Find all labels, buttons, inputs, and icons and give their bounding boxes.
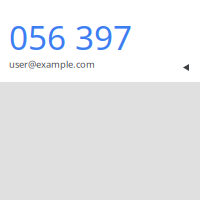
staticText: user@example.com: [9, 58, 95, 70]
button[interactable]: 056 397: [0, 0, 200, 82]
staticText: 056 397: [9, 15, 132, 59]
button[interactable]: Show previous code: [183, 64, 189, 71]
